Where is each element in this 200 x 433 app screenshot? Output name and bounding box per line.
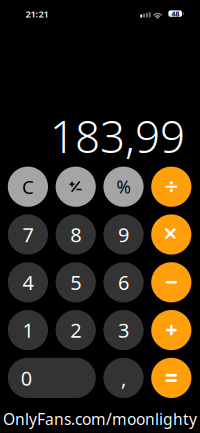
staticText: 3 — [118, 317, 129, 343]
button[interactable]: C — [8, 167, 48, 207]
button[interactable]: Add — [151, 310, 191, 350]
button[interactable]: % — [103, 167, 144, 207]
staticText: 8 — [70, 221, 81, 248]
button[interactable]: , — [103, 358, 144, 398]
button[interactable]: 1 — [8, 310, 48, 350]
staticText: OnlyFans.com/moonlighty — [3, 408, 197, 430]
staticText: 4 — [22, 269, 33, 296]
staticText: 48 — [171, 9, 179, 19]
button[interactable]: Multiply — [151, 214, 191, 255]
button[interactable]: 6 — [103, 262, 144, 302]
staticText: , — [121, 365, 126, 391]
button[interactable]: Toggle sign — [56, 167, 96, 207]
staticText: 183,99 — [50, 107, 185, 165]
button[interactable]: 8 — [56, 214, 96, 255]
button[interactable]: 5 — [56, 262, 96, 302]
button[interactable]: 3 — [103, 310, 144, 350]
staticText: C — [22, 174, 34, 199]
button[interactable]: 4 — [8, 262, 48, 302]
staticText: 9 — [118, 221, 129, 248]
button[interactable]: Equals — [151, 358, 191, 398]
staticText: 7 — [22, 221, 33, 248]
staticText: 21:21 — [25, 7, 48, 20]
button[interactable]: 9 — [103, 214, 144, 255]
button[interactable]: 0 — [8, 358, 96, 398]
staticText: 1 — [22, 317, 33, 343]
button[interactable]: 7 — [8, 214, 48, 255]
staticText: 5 — [70, 269, 81, 296]
button[interactable]: Subtract — [151, 262, 191, 302]
staticText: % — [116, 175, 130, 198]
staticText: 0 — [21, 365, 32, 391]
staticText: 2 — [70, 317, 81, 343]
staticText: 6 — [118, 269, 129, 296]
button[interactable]: Divide — [151, 167, 191, 207]
button[interactable]: 2 — [56, 310, 96, 350]
